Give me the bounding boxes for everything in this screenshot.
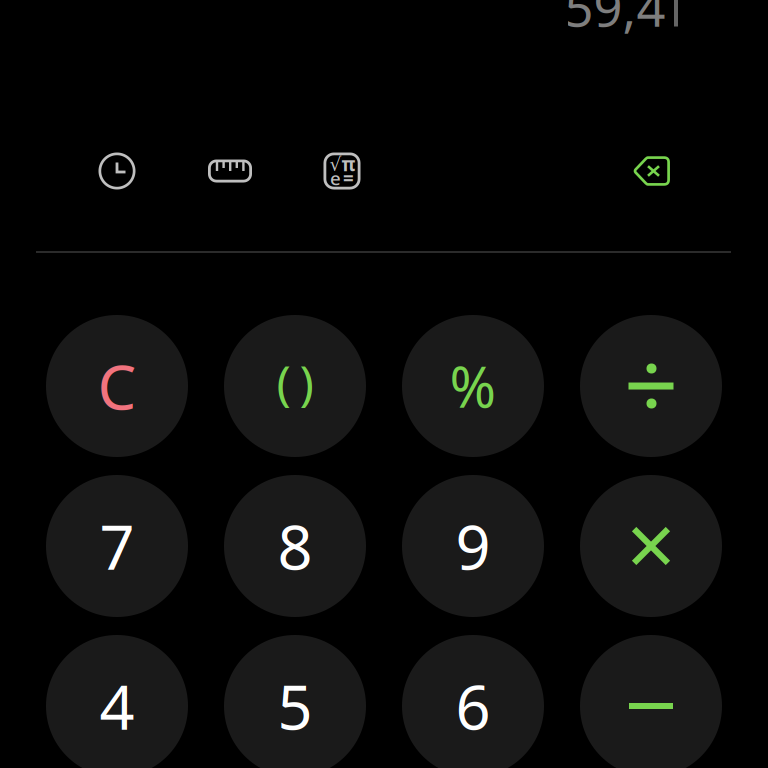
button[interactable]: 7 — [46, 475, 188, 617]
staticText: 9 — [455, 505, 490, 587]
staticText: ( — [276, 350, 290, 414]
button[interactable]: Unit converter — [208, 159, 252, 182]
staticText: % — [449, 349, 496, 423]
staticText: 6 — [455, 665, 490, 747]
button[interactable]: 8 — [224, 475, 366, 617]
button[interactable]: History — [99, 153, 135, 189]
staticText: = — [343, 166, 354, 190]
button[interactable] — [580, 635, 722, 768]
button[interactable] — [580, 475, 722, 617]
button[interactable]: 4 — [46, 635, 188, 768]
button[interactable]: 9 — [402, 475, 544, 617]
button[interactable]: 6 — [402, 635, 544, 768]
button[interactable]: % — [402, 315, 544, 457]
button[interactable]: 5 — [224, 635, 366, 768]
staticText: √ — [329, 153, 341, 175]
staticText: ) — [299, 350, 313, 414]
staticText: e — [330, 166, 341, 190]
button[interactable]: Delete — [633, 156, 671, 186]
staticText: 59,4 — [564, 0, 665, 41]
staticText: 5 — [277, 665, 312, 747]
button[interactable]: C — [46, 315, 188, 457]
staticText: 8 — [277, 505, 312, 587]
staticText: 7 — [99, 505, 134, 587]
staticText: 4 — [99, 665, 134, 747]
staticText: π — [341, 152, 355, 176]
button[interactable] — [580, 315, 722, 457]
button[interactable]: ( — [224, 315, 366, 457]
staticText: C — [97, 345, 136, 427]
button[interactable]: Formulas — [324, 153, 360, 189]
